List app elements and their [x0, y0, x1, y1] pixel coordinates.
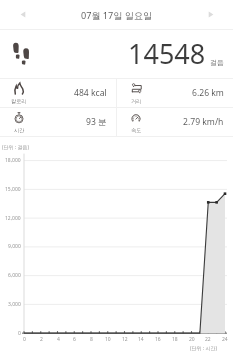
staticText: 16: [155, 336, 161, 343]
staticText: 12,000: [5, 215, 21, 222]
staticText: 4: [57, 336, 60, 343]
staticText: 0: [18, 330, 21, 337]
button[interactable]: Previous day: [0, 0, 46, 29]
staticText: 14548: [128, 35, 206, 72]
staticText: 8: [90, 336, 93, 343]
staticText: 칼로리: [11, 98, 27, 104]
staticText: 20: [189, 336, 195, 343]
staticText: 3,000: [8, 301, 21, 308]
button[interactable]: Next day: [187, 0, 233, 29]
button[interactable]: 칼로리: [0, 79, 116, 107]
staticText: (단위 : 시간): [190, 345, 217, 352]
staticText: 2.79 km/h: [183, 116, 224, 128]
staticText: 6: [73, 336, 76, 343]
staticText: 시간: [14, 127, 25, 133]
staticText: 18,000: [5, 157, 21, 164]
staticText: 93 분: [86, 116, 107, 128]
staticText: 24: [222, 336, 228, 343]
staticText: 0: [23, 336, 26, 343]
button[interactable]: 속도: [117, 108, 233, 136]
button[interactable]: 14548: [0, 30, 233, 78]
staticText: 12: [122, 336, 128, 343]
staticText: 15,000: [5, 186, 21, 193]
staticText: 거리: [131, 98, 142, 104]
staticText: 6,000: [8, 272, 21, 279]
staticText: 걸음: [210, 58, 224, 67]
staticText: 484 kcal: [74, 87, 107, 99]
staticText: 2: [40, 336, 43, 343]
staticText: 18: [172, 336, 178, 343]
staticText: 22: [205, 336, 211, 343]
staticText: 14: [138, 336, 144, 343]
staticText: (단위 : 걸음): [2, 144, 29, 151]
staticText: 9,000: [8, 243, 21, 250]
staticText: 07월 17일 일요일: [81, 9, 153, 21]
button[interactable]: 시간: [0, 108, 116, 136]
button[interactable]: 거리: [117, 79, 233, 107]
staticText: 속도: [131, 127, 142, 133]
staticText: 6.26 km: [192, 87, 224, 99]
staticText: 10: [105, 336, 111, 343]
